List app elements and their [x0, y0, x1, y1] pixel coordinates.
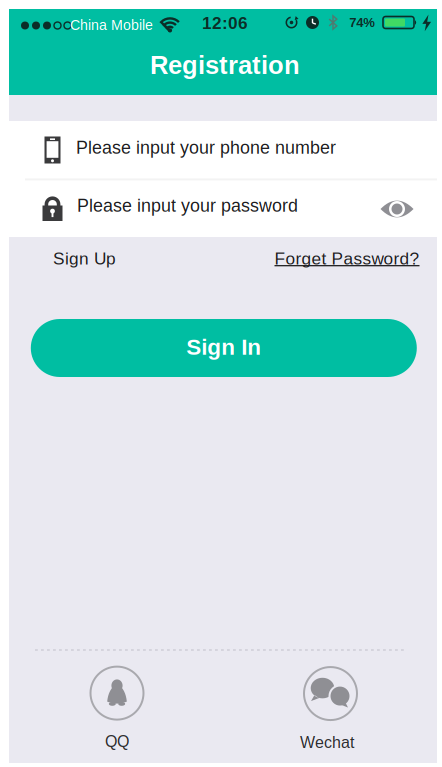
staticText: Please input your password: [77, 195, 298, 215]
staticText: QQ: [105, 732, 129, 750]
staticText: Forget Password?: [274, 249, 419, 268]
staticText: Sign In: [186, 334, 261, 360]
staticText: 74%: [349, 15, 375, 30]
button[interactable]: Wechat: [303, 667, 357, 751]
button[interactable]: Please input your phone number: [9, 121, 437, 179]
staticText: Registration: [150, 51, 300, 79]
staticText: Wechat: [300, 734, 354, 751]
staticText: China Mobile: [70, 17, 153, 33]
staticText: Sign Up: [53, 249, 116, 268]
staticText: Please input your phone number: [76, 137, 336, 157]
button[interactable]: Sign Up: [34, 240, 134, 276]
staticText: 12:06: [202, 13, 248, 33]
button[interactable]: Please input your password: [9, 179, 437, 237]
button[interactable]: Show password: [374, 189, 419, 229]
button[interactable]: Sign In: [31, 319, 417, 377]
button[interactable]: Forget Password?: [257, 240, 437, 276]
button[interactable]: QQ: [90, 666, 144, 750]
